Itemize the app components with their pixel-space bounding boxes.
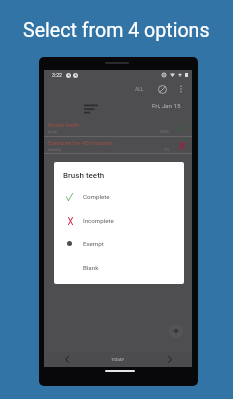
staticText: Fri, Jan 15	[152, 102, 181, 109]
button[interactable]: Brush teeth	[44, 118, 192, 136]
staticText: Brush teeth	[48, 121, 80, 128]
staticText: ALL	[135, 86, 144, 92]
staticText: daily	[48, 129, 57, 134]
button[interactable]: Add task	[169, 324, 183, 338]
staticText: Exercise for 45 minutes	[48, 139, 113, 146]
button[interactable]: Exempt	[54, 232, 184, 255]
button[interactable]: Blank	[54, 256, 184, 279]
button[interactable]: TODAY	[89, 352, 147, 367]
button[interactable]: Exercise for 45 minutes	[44, 136, 192, 154]
button[interactable]: Next day	[147, 352, 192, 367]
button[interactable]: Previous day	[44, 352, 89, 367]
staticText: weekly	[48, 147, 61, 152]
staticText: 3:22	[52, 72, 63, 78]
staticText: Select from 4 options	[23, 19, 210, 42]
staticText: 0%	[164, 147, 170, 152]
staticText: 100%	[159, 129, 170, 134]
button[interactable]: Complete	[54, 185, 184, 208]
staticText: Complete	[83, 193, 110, 200]
button[interactable]: Incomplete	[54, 209, 184, 232]
button[interactable]: ALL	[133, 83, 146, 95]
button[interactable]: Notifications off	[155, 82, 169, 96]
staticText: Incomplete	[83, 217, 114, 224]
button[interactable]: More options	[174, 82, 188, 96]
staticText: Exempt	[83, 240, 104, 247]
staticText: TODAY	[111, 357, 125, 362]
staticText: Brush teeth	[63, 171, 105, 180]
staticText: Blank	[83, 264, 99, 271]
